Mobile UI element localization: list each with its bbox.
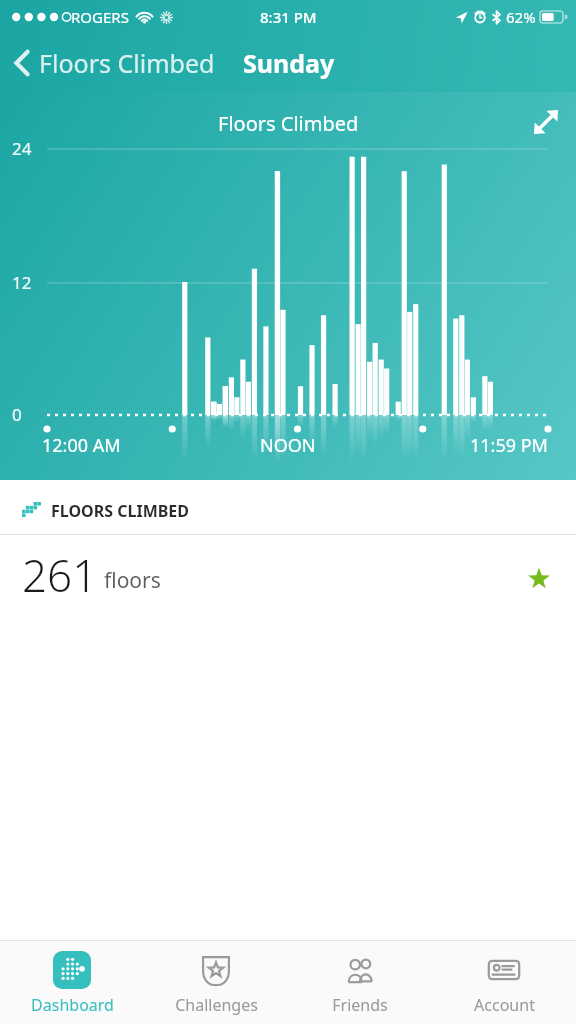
staticText: Floors Climbed (39, 46, 215, 80)
staticText: NOON (260, 433, 316, 458)
staticText: Challenges (175, 994, 258, 1016)
staticText: Floors Climbed (218, 110, 359, 137)
staticText: ROGERS (71, 7, 129, 27)
button[interactable]: FLOORS CLIMBED (0, 480, 576, 534)
staticText: 62% (506, 7, 536, 27)
staticText: floors (104, 566, 161, 595)
staticText: 11:59 PM (470, 433, 548, 458)
button[interactable]: Challenges (144, 941, 288, 1024)
button[interactable]: Friends (288, 941, 432, 1024)
staticText: 8:31 PM (260, 7, 317, 27)
staticText: 24 (12, 137, 32, 160)
staticText: 12:00 AM (42, 433, 121, 458)
button[interactable]: Dashboard (0, 941, 144, 1024)
staticText: Friends (332, 994, 388, 1016)
staticText: Account (474, 994, 535, 1016)
button[interactable]: Expand chart (526, 102, 566, 142)
staticText: 12 (12, 271, 32, 294)
button[interactable]: Account (432, 941, 576, 1024)
staticText: 261 (22, 545, 98, 605)
staticText: Sunday (243, 46, 335, 80)
button[interactable]: 261 (0, 535, 576, 623)
staticText: Dashboard (31, 994, 114, 1016)
staticText: FLOORS CLIMBED (51, 500, 190, 522)
other: Back (14, 49, 30, 77)
button[interactable]: Back (0, 46, 223, 80)
staticText: 0 (12, 403, 22, 426)
